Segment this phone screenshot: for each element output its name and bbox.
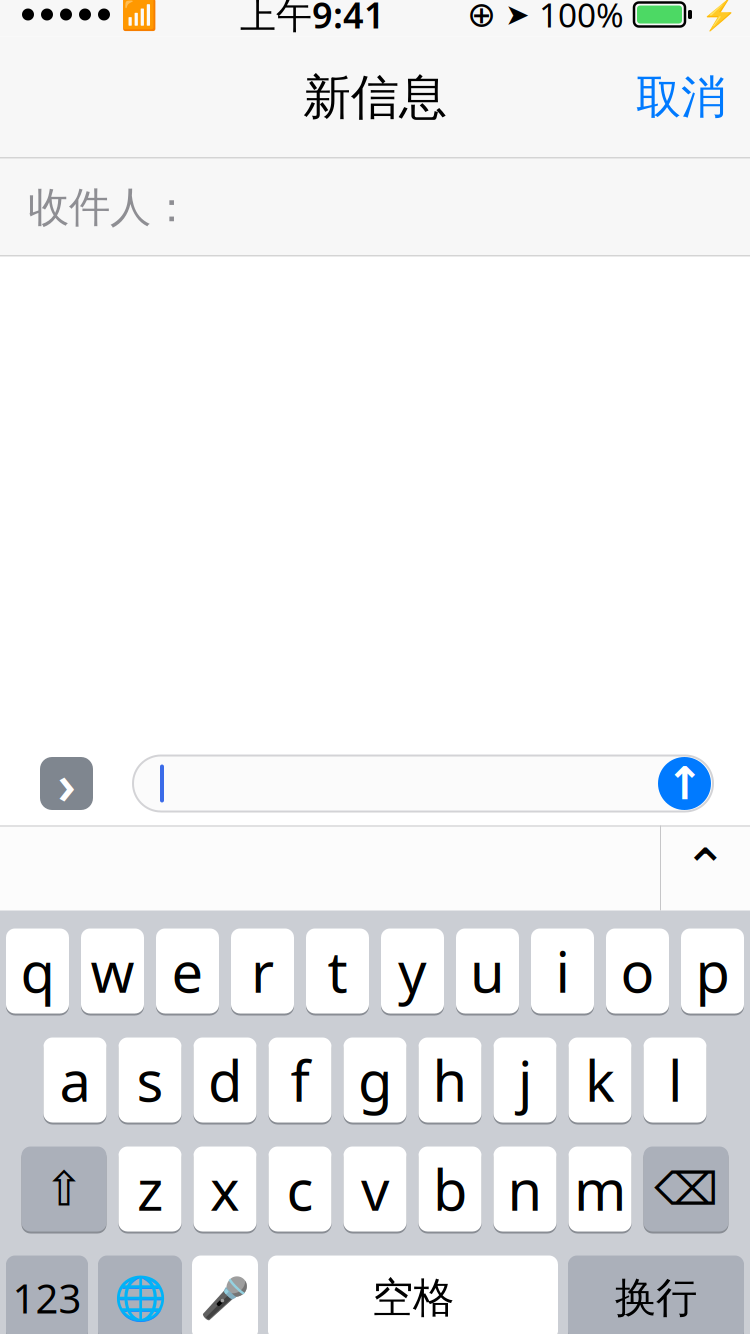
staticText: k [585, 1043, 615, 1117]
button[interactable]: i [531, 928, 594, 1013]
staticText: 换行 [615, 1273, 697, 1323]
button[interactable]: Delete [643, 1146, 728, 1231]
staticText: 123 [12, 1271, 81, 1324]
button[interactable]: u [456, 928, 519, 1013]
button[interactable]: 空格 [268, 1255, 558, 1334]
button[interactable]: d [193, 1037, 256, 1122]
button[interactable]: h [418, 1037, 481, 1122]
button[interactable]: m [568, 1146, 631, 1231]
staticText: h [432, 1043, 467, 1117]
staticText: n [507, 1152, 542, 1226]
button[interactable]: n [493, 1146, 556, 1231]
button[interactable]: b [418, 1146, 481, 1231]
staticText: b [433, 1152, 467, 1226]
staticText: 🎤 [200, 1275, 250, 1321]
staticText: o [620, 934, 654, 1008]
staticText: i [555, 934, 569, 1008]
button[interactable]: y [381, 928, 444, 1013]
staticText: ⌫ [654, 1163, 718, 1215]
button[interactable]: 123 [6, 1255, 88, 1334]
button[interactable]: f [268, 1037, 331, 1122]
staticText: z [137, 1152, 163, 1226]
button[interactable]: Expand candidates [661, 825, 750, 910]
staticText: s [136, 1043, 163, 1117]
button[interactable]: 取消 [612, 54, 750, 141]
staticText: a [59, 1043, 90, 1117]
staticText: 上午9:41 [240, 0, 385, 38]
button[interactable]: g [343, 1037, 406, 1122]
button[interactable]: a [43, 1037, 106, 1122]
staticText: e [171, 934, 203, 1008]
button[interactable]: r [231, 928, 294, 1013]
button[interactable]: x [193, 1146, 256, 1231]
staticText: 🌐 [113, 1274, 166, 1322]
staticText: u [470, 934, 505, 1008]
staticText: ⌃ [683, 838, 728, 898]
staticText: 收件人： [28, 182, 192, 233]
button[interactable]: o [606, 928, 669, 1013]
staticText: 100% [539, 0, 624, 37]
button[interactable]: v [343, 1146, 406, 1231]
button[interactable]: l [643, 1037, 706, 1122]
button[interactable]: Dictation [192, 1255, 258, 1334]
staticText: y [398, 934, 427, 1008]
staticText: r [251, 934, 274, 1008]
staticText: 📶 [121, 0, 158, 31]
staticText: 取消 [636, 70, 726, 125]
staticText: p [695, 934, 729, 1008]
staticText: ⊕ [467, 0, 496, 34]
staticText: g [358, 1043, 392, 1117]
button[interactable]: q [6, 928, 69, 1013]
button[interactable]: s [118, 1037, 181, 1122]
button[interactable]: Shift [21, 1146, 106, 1231]
staticText: m [574, 1152, 626, 1226]
staticText: d [208, 1043, 242, 1117]
staticText: › [57, 748, 75, 819]
staticText: ➤ [505, 0, 530, 31]
button[interactable]: j [493, 1037, 556, 1122]
staticText: ⚡ [701, 0, 738, 31]
button[interactable]: Next keyboard [98, 1255, 182, 1334]
staticText: ↑ [665, 758, 703, 809]
staticText: q [20, 934, 54, 1008]
staticText: f [290, 1043, 309, 1117]
button[interactable]: w [81, 928, 144, 1013]
button[interactable]: k [568, 1037, 631, 1122]
staticText: l [668, 1043, 682, 1117]
staticText: 空格 [372, 1273, 454, 1323]
staticText: t [327, 934, 347, 1008]
staticText: v [361, 1152, 389, 1226]
staticText: 新信息 [303, 68, 447, 127]
staticText: c [286, 1152, 313, 1226]
button[interactable]: 收件人： [0, 158, 750, 256]
button[interactable]: More apps [40, 757, 93, 810]
staticText: x [210, 1152, 240, 1226]
button[interactable]: c [268, 1146, 331, 1231]
button[interactable]: p [681, 928, 744, 1013]
button[interactable]: 换行 [568, 1255, 744, 1334]
button[interactable]: t [306, 928, 369, 1013]
staticText: w [90, 934, 134, 1008]
button[interactable]: Send [658, 757, 711, 810]
button[interactable]: e [156, 928, 219, 1013]
staticText: ⇧ [44, 1162, 84, 1216]
button[interactable]: z [118, 1146, 181, 1231]
staticText: j [518, 1043, 532, 1117]
